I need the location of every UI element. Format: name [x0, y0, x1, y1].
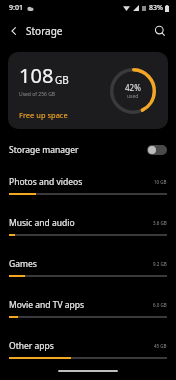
staticText: Other apps: [9, 340, 54, 352]
staticText: 9.2 GB: [153, 261, 167, 267]
staticText: 108: [19, 62, 54, 89]
staticText: used: [127, 93, 139, 100]
staticText: 3.6 GB: [153, 220, 167, 226]
button[interactable]: Files: [0, 370, 176, 380]
staticText: Storage: [26, 24, 63, 38]
staticText: 83%: [149, 3, 163, 13]
staticText: 45 GB: [154, 343, 167, 349]
button[interactable]: Search: [153, 24, 176, 38]
staticText: Storage manager: [9, 144, 79, 156]
staticText: Used of 256 GB: [19, 91, 56, 98]
staticText: 10 GB: [154, 179, 167, 185]
staticText: Music and audio: [9, 217, 75, 229]
staticText: Movie and TV apps: [9, 299, 84, 311]
button[interactable]: Other apps: [0, 329, 176, 370]
staticText: Photos and videos: [9, 176, 83, 188]
staticText: 9:01: [9, 3, 23, 13]
button[interactable]: Storage manager: [0, 139, 176, 161]
button[interactable]: 108: [8, 52, 168, 129]
staticText: Free up space: [19, 110, 68, 120]
button[interactable]: Music and audio: [0, 206, 176, 247]
button[interactable]: Games: [0, 247, 176, 288]
button[interactable]: Movie and TV apps: [0, 288, 176, 329]
staticText: GB: [55, 73, 69, 87]
button[interactable]: Back: [0, 20, 69, 42]
staticText: 42%: [125, 82, 141, 93]
button[interactable]: Photos and videos: [0, 165, 176, 206]
staticText: 6.0 GB: [153, 302, 167, 308]
staticText: Games: [9, 258, 37, 270]
other: Back: [8, 25, 20, 37]
